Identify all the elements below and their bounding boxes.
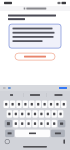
button[interactable]: Key: [26, 110, 31, 118]
button[interactable]: Key: [32, 110, 38, 118]
button[interactable]: Emoji: [3, 137, 11, 146]
button[interactable]: Key: [45, 120, 51, 127]
button[interactable]: Key: [19, 120, 25, 127]
button[interactable]: Key: [29, 100, 35, 108]
button[interactable]: Key: [39, 110, 44, 118]
button[interactable]: Key: [35, 100, 41, 108]
button[interactable]: Done: [56, 85, 70, 90]
button[interactable]: Space: [15, 130, 50, 137]
button[interactable]: Key: [58, 110, 63, 118]
button[interactable]: Key: [48, 100, 54, 108]
button[interactable]: Suggestion one: [0, 94, 23, 96]
button[interactable]: Key: [3, 100, 9, 108]
button[interactable]: Key: [5, 120, 12, 127]
button[interactable]: Dictation: [61, 137, 67, 146]
button[interactable]: Key: [45, 110, 50, 118]
button[interactable]: Key: [39, 120, 44, 127]
button[interactable]: Suggestion three: [47, 94, 70, 96]
button[interactable]: [15, 53, 55, 60]
button[interactable]: Return: [51, 130, 65, 137]
button[interactable]: Key: [16, 100, 22, 108]
button[interactable]: Key: [42, 100, 47, 108]
button[interactable]: Key: [19, 110, 25, 118]
button[interactable]: Numbers: [5, 130, 14, 137]
button[interactable]: Key: [10, 100, 15, 108]
button[interactable]: Key: [51, 110, 57, 118]
button[interactable]: Key: [7, 110, 12, 118]
button[interactable]: Key: [55, 100, 60, 108]
button[interactable]: Previous and next field: [0, 86, 14, 90]
button[interactable]: Key: [13, 110, 18, 118]
button[interactable]: Key: [13, 120, 19, 127]
button[interactable]: Key: [23, 100, 28, 108]
button[interactable]: Key: [51, 120, 57, 127]
button[interactable]: Key: [61, 100, 66, 108]
button[interactable]: Suggestion two: [23, 94, 47, 96]
button[interactable]: Key: [26, 120, 31, 127]
button[interactable]: Key: [58, 120, 65, 127]
button[interactable]: Key: [32, 120, 38, 127]
